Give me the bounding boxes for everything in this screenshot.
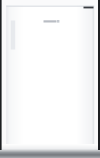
button[interactable]: Product photo [0,0,100,158]
